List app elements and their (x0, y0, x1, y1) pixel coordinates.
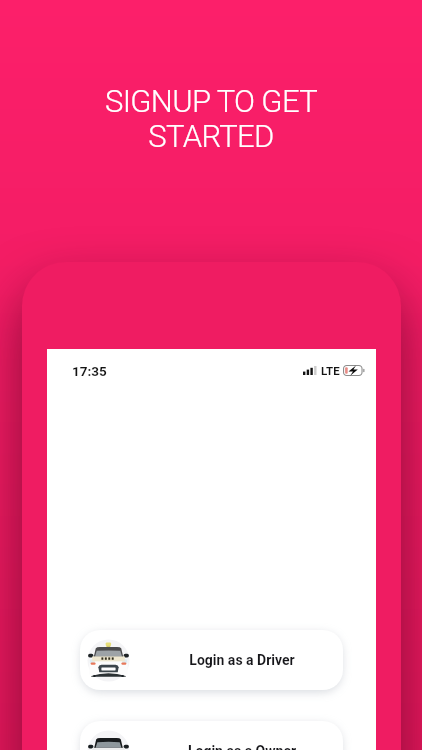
other: Car owner (87, 730, 130, 750)
other: Taxi (87, 639, 130, 682)
staticText: 17:35 (72, 363, 107, 379)
staticText: Login as a Owner (141, 743, 343, 750)
staticText: Login as a Driver (141, 652, 343, 668)
staticText: LTE (321, 364, 340, 377)
button[interactable]: Car owner (80, 721, 343, 750)
button[interactable]: Taxi (80, 630, 343, 690)
staticText: SIGNUP TO GET STARTED (0, 83, 422, 154)
